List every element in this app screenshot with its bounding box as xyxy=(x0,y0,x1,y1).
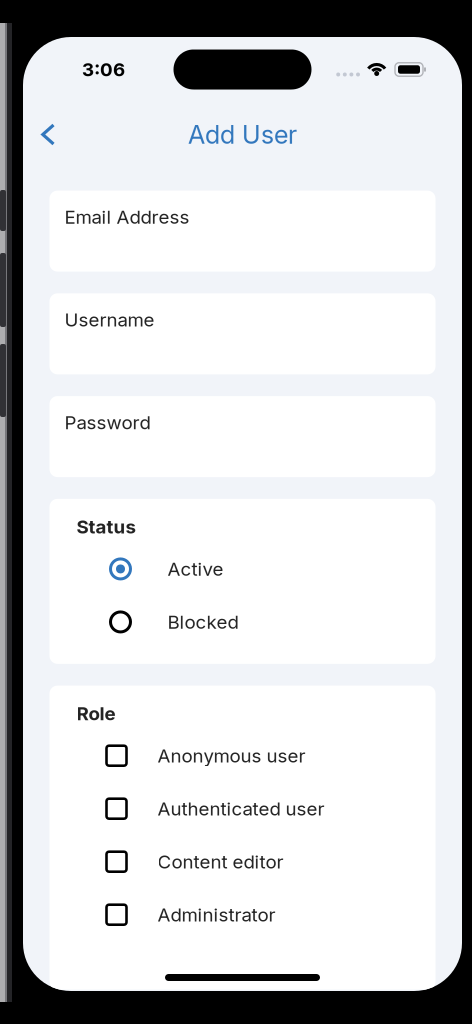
staticText: Email Address xyxy=(64,206,189,228)
staticText: Add User xyxy=(188,119,297,150)
button[interactable]: Anonymous user xyxy=(49,729,435,782)
button[interactable]: Content editor xyxy=(49,835,435,888)
staticText: Username xyxy=(64,308,154,331)
button[interactable]: Blocked xyxy=(49,595,435,648)
staticText: Role xyxy=(76,702,115,725)
staticText: Content editor xyxy=(157,850,283,873)
staticText: Active xyxy=(167,558,223,580)
staticText: Administrator xyxy=(157,903,275,926)
staticText: Anonymous user xyxy=(157,744,305,767)
staticText: 3:06 xyxy=(82,58,125,81)
button[interactable]: Back xyxy=(26,112,70,156)
button[interactable]: Authenticated user xyxy=(49,782,435,835)
staticText: Authenticated user xyxy=(157,797,324,820)
staticText: Password xyxy=(64,411,150,434)
staticText: Status xyxy=(76,515,135,538)
button[interactable]: Active xyxy=(49,542,435,595)
staticText: Blocked xyxy=(167,611,238,633)
button[interactable]: Administrator xyxy=(49,888,435,941)
